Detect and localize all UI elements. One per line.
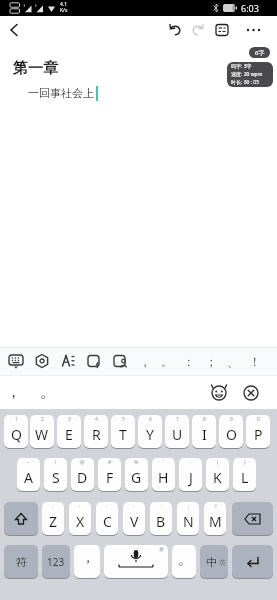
staticText: 4 bbox=[95, 416, 98, 423]
button[interactable]: # bbox=[98, 458, 121, 492]
button[interactable]: 4 bbox=[84, 415, 108, 449]
staticText: H bbox=[158, 468, 169, 487]
staticText: 码字: 3字 bbox=[231, 63, 252, 70]
button[interactable]: · bbox=[123, 502, 145, 536]
button[interactable] bbox=[188, 20, 208, 40]
button[interactable] bbox=[212, 20, 232, 40]
button[interactable]: 1 bbox=[4, 415, 28, 449]
button[interactable]: 符 bbox=[4, 545, 38, 579]
staticText: ， bbox=[6, 383, 21, 402]
staticText: R bbox=[92, 425, 101, 444]
button[interactable]: ， bbox=[74, 545, 100, 579]
button[interactable]: ! bbox=[44, 458, 67, 492]
staticText: ： bbox=[159, 503, 164, 509]
staticText: ， bbox=[139, 354, 151, 369]
staticText: Y bbox=[146, 425, 154, 444]
button[interactable] bbox=[232, 502, 273, 536]
button[interactable] bbox=[58, 351, 78, 371]
staticText: J bbox=[189, 468, 193, 487]
staticText: ； bbox=[205, 354, 217, 369]
staticText: 。 bbox=[40, 383, 55, 402]
staticText: 4.1 bbox=[60, 1, 68, 8]
button[interactable]: ， bbox=[135, 350, 155, 372]
staticText: · bbox=[52, 503, 54, 510]
staticText: U bbox=[172, 425, 183, 444]
button[interactable]: · bbox=[42, 502, 64, 536]
button[interactable]: 中 bbox=[200, 545, 228, 579]
button[interactable]: 2 bbox=[30, 415, 54, 449]
button[interactable]: 6 bbox=[138, 415, 162, 449]
staticText: ！ bbox=[249, 354, 261, 369]
staticText: 6字 bbox=[255, 49, 265, 57]
button[interactable] bbox=[32, 351, 52, 371]
staticText: C bbox=[103, 512, 112, 531]
button[interactable]: · bbox=[96, 502, 118, 536]
button[interactable] bbox=[84, 351, 104, 371]
button[interactable]: ； bbox=[177, 502, 199, 536]
button[interactable] bbox=[240, 380, 262, 405]
staticText: 2 bbox=[41, 416, 44, 423]
staticText: · bbox=[106, 503, 108, 510]
staticText: N bbox=[183, 512, 194, 531]
staticText: 5 bbox=[122, 416, 125, 423]
button[interactable] bbox=[244, 20, 264, 40]
staticText: ( bbox=[217, 459, 219, 466]
staticText: E bbox=[65, 425, 73, 444]
staticText: 6 bbox=[149, 416, 152, 423]
button[interactable]: 、 bbox=[223, 350, 243, 372]
button[interactable] bbox=[232, 545, 273, 579]
button[interactable]: ！ bbox=[245, 350, 265, 372]
button[interactable]: ： bbox=[150, 502, 172, 536]
staticText: I bbox=[202, 425, 207, 444]
button[interactable]: · bbox=[179, 458, 202, 492]
staticText: 。 bbox=[178, 551, 192, 569]
staticText: V bbox=[130, 512, 139, 531]
staticText: 中 bbox=[206, 555, 217, 569]
staticText: ' bbox=[163, 459, 165, 466]
button[interactable] bbox=[110, 351, 130, 371]
button[interactable] bbox=[4, 502, 38, 536]
button[interactable]: ： bbox=[179, 350, 199, 372]
staticText: K/s bbox=[60, 7, 68, 14]
staticText: 。 bbox=[161, 354, 173, 369]
staticText: 6:03 bbox=[241, 2, 259, 14]
staticText: 7 bbox=[176, 416, 179, 423]
button[interactable]: 7 bbox=[165, 415, 189, 449]
staticText: ？ bbox=[213, 503, 218, 509]
button[interactable]: ' bbox=[152, 458, 175, 492]
button[interactable]: ( bbox=[206, 458, 229, 492]
button[interactable]: 0 bbox=[246, 415, 270, 449]
staticText: L bbox=[241, 468, 249, 487]
staticText: 英 bbox=[219, 558, 226, 567]
button[interactable]: @ bbox=[71, 458, 94, 492]
staticText: F bbox=[106, 468, 114, 487]
staticText: Z bbox=[49, 512, 58, 531]
button[interactable]: 9 bbox=[219, 415, 243, 449]
staticText: 9 bbox=[230, 416, 233, 423]
button[interactable]: ； bbox=[201, 350, 221, 372]
button[interactable]: 拼 bbox=[104, 545, 168, 579]
button[interactable]: ， bbox=[2, 378, 24, 406]
button[interactable]: 。 bbox=[157, 350, 177, 372]
button[interactable] bbox=[165, 20, 185, 40]
button[interactable]: ~ bbox=[17, 458, 40, 492]
button[interactable] bbox=[6, 351, 26, 371]
button[interactable] bbox=[208, 380, 230, 405]
staticText: 、 bbox=[227, 354, 239, 369]
button[interactable]: 8 bbox=[192, 415, 216, 449]
button[interactable]: · bbox=[69, 502, 91, 536]
staticText: # bbox=[108, 459, 112, 466]
button[interactable]: % bbox=[125, 458, 148, 492]
button[interactable]: ) bbox=[233, 458, 256, 492]
staticText: M bbox=[209, 512, 222, 531]
staticText: 1 bbox=[15, 416, 18, 423]
button[interactable]: 。 bbox=[172, 545, 196, 579]
button[interactable]: 3 bbox=[57, 415, 81, 449]
button[interactable]: 123 bbox=[42, 545, 70, 579]
staticText: % bbox=[134, 459, 139, 466]
button[interactable] bbox=[4, 20, 24, 40]
button[interactable]: 。 bbox=[36, 378, 58, 406]
button[interactable]: 5 bbox=[111, 415, 135, 449]
staticText: A bbox=[24, 468, 33, 487]
button[interactable]: ？ bbox=[204, 502, 226, 536]
